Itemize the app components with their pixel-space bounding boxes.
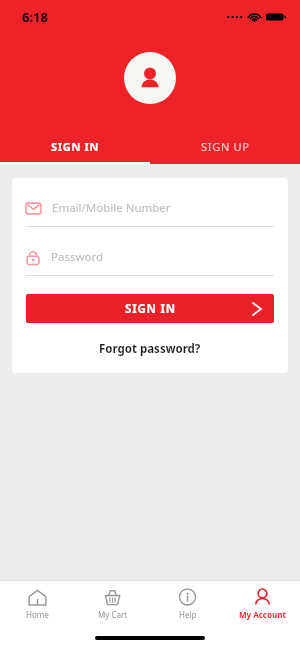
staticText: SIGN IN bbox=[125, 301, 176, 317]
button[interactable]: My Cart bbox=[75, 589, 150, 620]
staticText: My Cart bbox=[98, 609, 128, 620]
button[interactable]: My Account bbox=[225, 588, 300, 620]
button[interactable]: SIGN IN bbox=[26, 294, 274, 323]
staticText: My Account bbox=[239, 609, 286, 620]
staticText: Help bbox=[179, 609, 197, 620]
button[interactable]: Home bbox=[0, 589, 75, 620]
staticText: SIGN UP bbox=[201, 139, 250, 154]
button[interactable]: SIGN UP bbox=[150, 130, 300, 162]
button[interactable]: Password bbox=[26, 245, 274, 276]
staticText: 6:18 bbox=[22, 8, 48, 26]
staticText: Email/Mobile Number bbox=[52, 200, 171, 216]
staticText: SIGN IN bbox=[51, 139, 100, 154]
staticText: Password bbox=[51, 249, 104, 265]
button[interactable]: Forgot password? bbox=[95, 337, 205, 361]
button[interactable]: Help bbox=[150, 588, 225, 620]
staticText: Home bbox=[26, 609, 49, 620]
button[interactable]: SIGN IN bbox=[0, 130, 150, 162]
button[interactable]: Email/Mobile Number bbox=[26, 196, 274, 227]
